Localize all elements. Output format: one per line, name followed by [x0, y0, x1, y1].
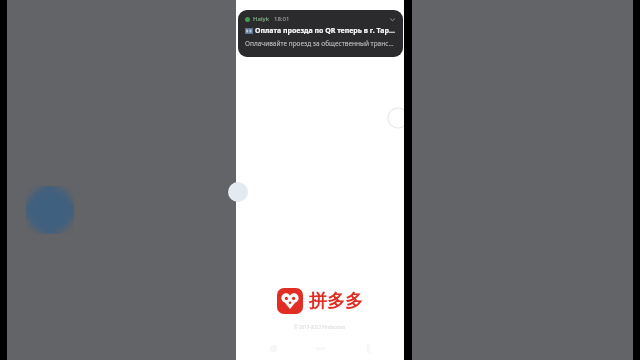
other: Play	[26, 186, 74, 234]
staticText: 拼多多	[309, 290, 363, 313]
other: Expand	[389, 16, 396, 23]
button[interactable]: Halyk	[238, 10, 403, 57]
other: QR	[245, 28, 253, 34]
button[interactable]: Pinduoduo	[277, 288, 303, 314]
staticText: 18:01	[274, 15, 290, 23]
staticText: Оплачивайте проезд за общественный транс…	[245, 39, 396, 48]
staticText: Оплата проезда по QR теперь в г. Тараз!	[255, 26, 396, 36]
staticText: Halyk	[253, 15, 270, 23]
staticText: © 2015-2023 Pinduoduo	[294, 324, 346, 330]
